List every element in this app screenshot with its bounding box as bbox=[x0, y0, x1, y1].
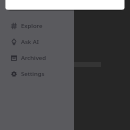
staticText: Settings bbox=[21, 70, 45, 78]
other: Settings bbox=[11, 71, 17, 77]
staticText: Explore bbox=[21, 22, 43, 30]
button[interactable]: Ask AI bbox=[0, 34, 74, 50]
other: Archived bbox=[11, 55, 17, 61]
other: Explore bbox=[11, 23, 17, 29]
other: Ask AI bbox=[11, 39, 17, 45]
staticText: Archived bbox=[21, 54, 47, 62]
staticText: Ask AI bbox=[21, 38, 39, 46]
button[interactable]: Settings bbox=[0, 66, 74, 82]
button[interactable]: Archived bbox=[0, 50, 74, 66]
button[interactable]: Explore bbox=[0, 18, 74, 34]
